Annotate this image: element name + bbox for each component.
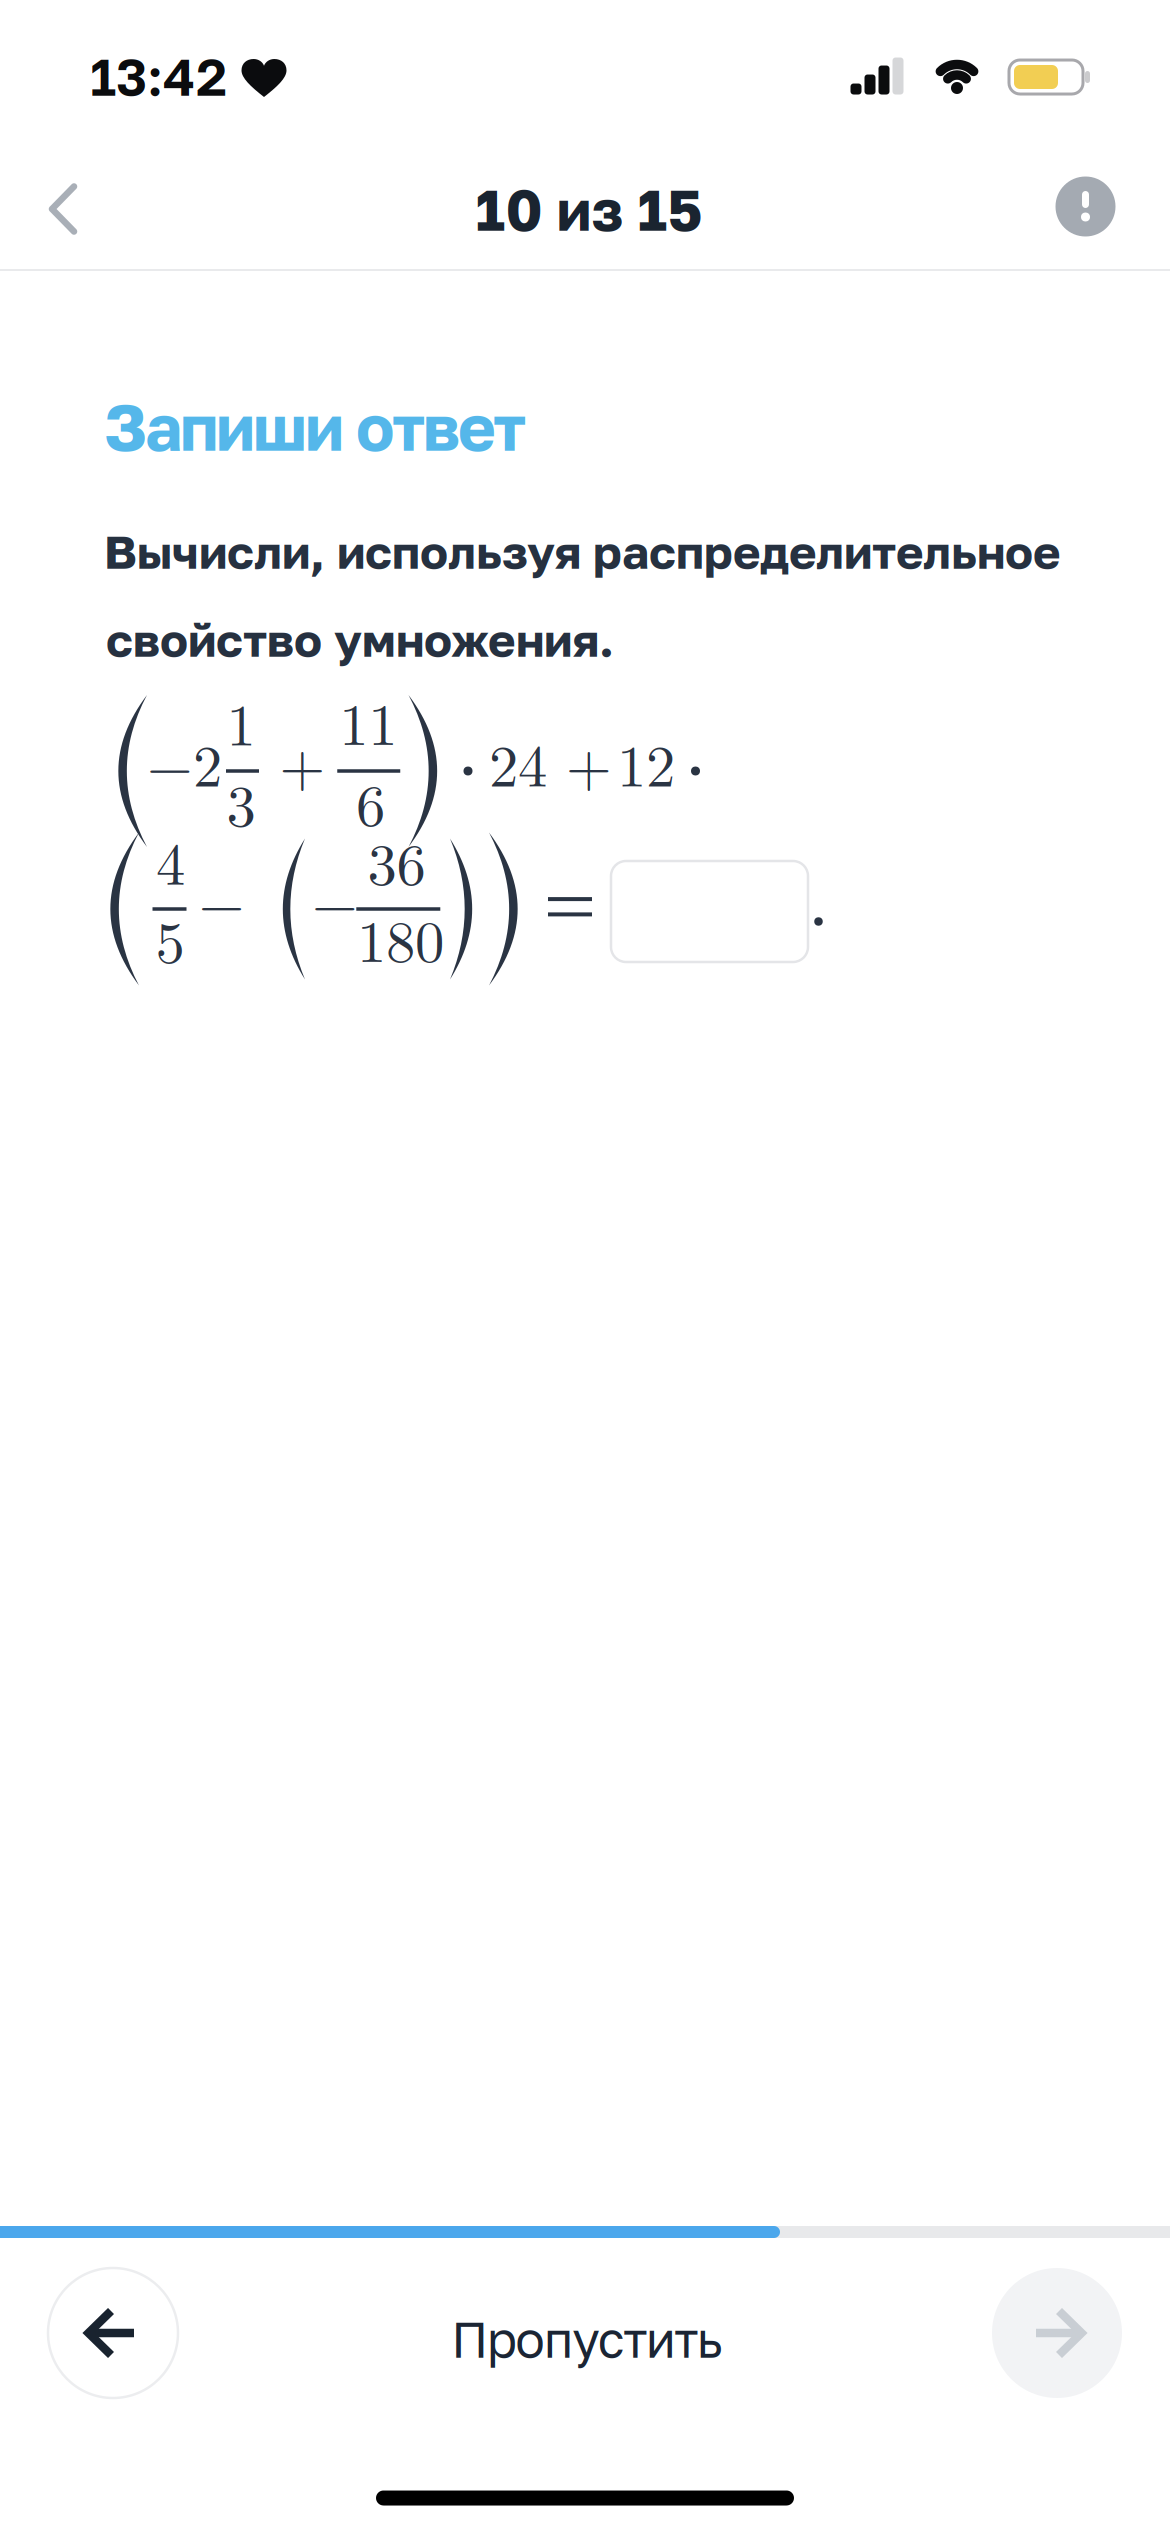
button[interactable]: Подсказка (1055, 176, 1115, 236)
staticText: 180 (357, 896, 444, 979)
button[interactable]: Назад (18, 164, 108, 254)
staticText: 36 (367, 819, 425, 902)
staticText: + (566, 720, 612, 803)
staticText: 12 (617, 720, 675, 803)
staticText: Запиши ответ (104, 388, 526, 465)
staticText: 4 (156, 819, 185, 902)
staticText: Пропустить (451, 2309, 723, 2369)
staticText: − (199, 858, 245, 941)
staticText: 1 (226, 679, 255, 762)
button[interactable]: Пропустить (427, 2284, 747, 2394)
staticText: −2 (147, 720, 222, 803)
button[interactable]: Далее (992, 2268, 1122, 2398)
staticText: 11 (339, 679, 397, 762)
staticText: − (312, 858, 358, 941)
button[interactable]: Поле для ответа (611, 861, 808, 962)
staticText: + (279, 720, 325, 803)
staticText: 3 (226, 760, 255, 843)
staticText: 24 (489, 720, 547, 803)
staticText: 5 (155, 897, 184, 980)
staticText: 6 (356, 760, 385, 843)
button[interactable]: Назад (48, 2268, 178, 2398)
staticText: 10 из 15 (475, 175, 702, 243)
staticText: Вычисли, используя распределительное (104, 523, 1061, 579)
staticText: 13:42 (90, 45, 227, 107)
staticText: свойство умножения. (106, 611, 614, 667)
